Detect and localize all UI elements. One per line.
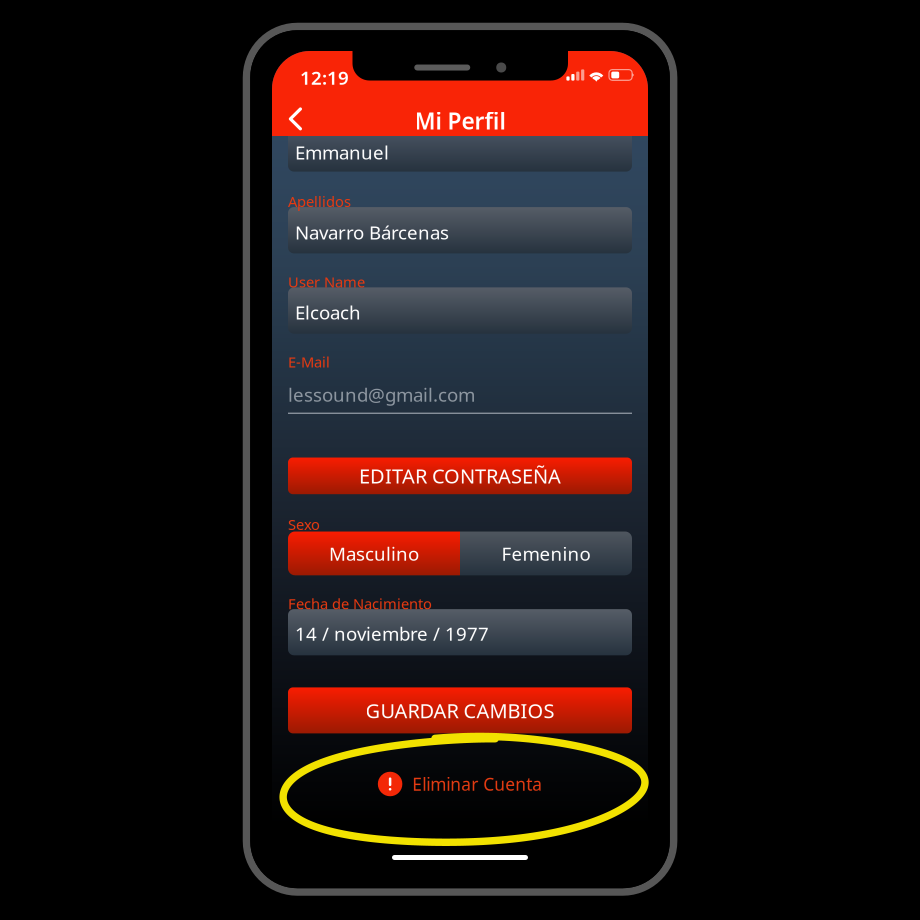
staticText: GUARDAR CAMBIOS <box>365 697 554 724</box>
button[interactable]: Femenino <box>460 531 632 575</box>
button[interactable]: Eliminar Cuenta <box>362 760 558 808</box>
staticText: Sexo <box>288 514 320 534</box>
button[interactable]: Masculino <box>288 531 460 575</box>
staticText: Eliminar Cuenta <box>412 772 542 795</box>
staticText: User Name <box>288 272 365 292</box>
staticText: Apellidos <box>288 192 351 211</box>
button[interactable]: GUARDAR CAMBIOS <box>288 687 632 733</box>
button[interactable]: EDITAR CONTRASEÑA <box>288 457 632 494</box>
staticText: Masculino <box>329 541 419 566</box>
staticText: lessound@gmail.com <box>288 382 475 407</box>
staticText: EDITAR CONTRASEÑA <box>359 463 561 489</box>
staticText: Femenino <box>501 541 590 566</box>
staticText: Elcoach <box>295 300 361 325</box>
staticText: Navarro Bárcenas <box>295 220 449 245</box>
staticText: 12:19 <box>300 65 349 90</box>
staticText: 14 / noviembre / 1977 <box>295 621 489 646</box>
staticText: Mi Perfil <box>414 106 505 136</box>
staticText: Fecha de Nacimiento <box>288 594 432 613</box>
staticText: E-Mail <box>288 352 330 372</box>
button[interactable]: Back <box>273 97 317 141</box>
staticText: Emmanuel <box>295 140 389 165</box>
